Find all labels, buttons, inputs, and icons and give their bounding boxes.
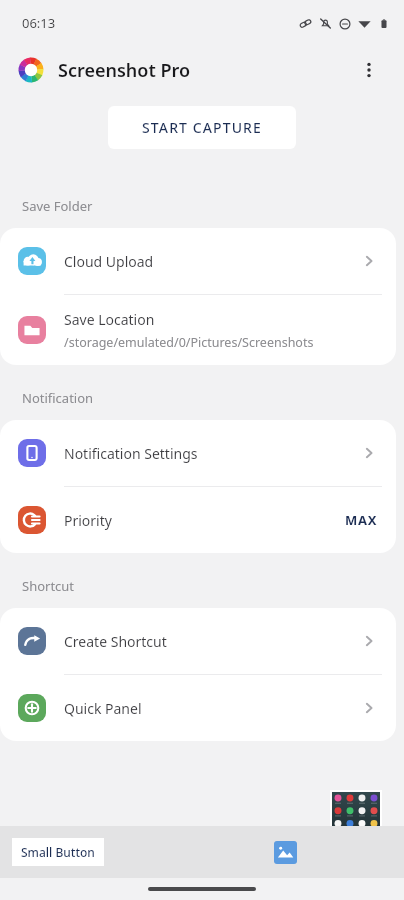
button[interactable]: Cloud Upload	[0, 228, 396, 294]
staticText: Shortcut	[22, 577, 75, 595]
button[interactable]: More options	[352, 53, 386, 87]
staticText: Priority	[64, 511, 112, 530]
staticText: Notification	[22, 389, 94, 407]
staticText: Small Button	[21, 844, 95, 860]
staticText: START CAPTURE	[142, 118, 262, 137]
button[interactable]: Quick Panel	[0, 675, 396, 741]
button[interactable]: Screenshot preview	[332, 792, 380, 861]
button[interactable]: Save Location	[0, 295, 396, 365]
staticText: Create Shortcut	[64, 632, 167, 651]
button[interactable]: Notification Settings	[0, 420, 396, 486]
staticText: Quick Panel	[64, 699, 142, 718]
staticText: Screenshot Pro	[58, 58, 191, 83]
staticText: Cloud Upload	[64, 252, 154, 271]
staticText: Save Folder	[22, 197, 93, 215]
staticText: MAX	[345, 511, 378, 529]
button[interactable]: Gallery	[274, 841, 297, 864]
button[interactable]: START CAPTURE	[108, 106, 296, 149]
button[interactable]: Priority	[0, 487, 396, 553]
staticText: Save Location	[64, 310, 155, 329]
button[interactable]: Small Button	[12, 838, 104, 866]
staticText: Notification Settings	[64, 444, 198, 463]
staticText: /storage/emulated/0/Pictures/Screenshots	[64, 334, 314, 351]
staticText: 06:13	[22, 14, 56, 32]
button[interactable]: Create Shortcut	[0, 608, 396, 674]
